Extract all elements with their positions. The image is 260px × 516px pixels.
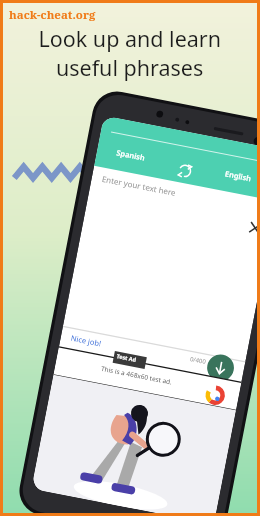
button[interactable]: Look up and learn useful phrases promo [0, 0, 260, 516]
